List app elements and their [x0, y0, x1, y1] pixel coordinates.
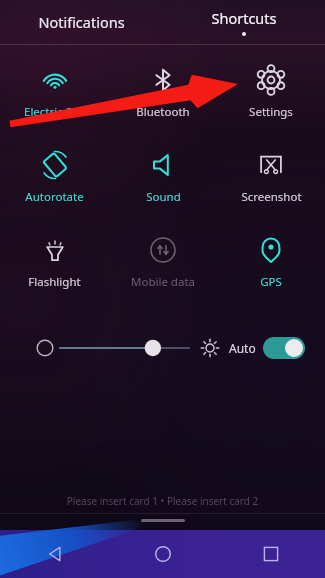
button[interactable]: Bluetooth: [109, 61, 217, 124]
staticText: Bluetooth: [136, 104, 190, 120]
button[interactable]: Mobile data: [109, 231, 217, 294]
staticText: Please insert card 1 • Please insert car…: [0, 494, 325, 508]
staticText: Shortcuts: [211, 8, 277, 28]
button[interactable]: Electric Sea: [0, 61, 109, 124]
button[interactable]: [60, 331, 189, 365]
button[interactable]: Flashlight: [0, 231, 109, 294]
staticText: Auto: [229, 340, 256, 356]
button[interactable]: Shortcuts: [162, 0, 325, 44]
staticText: Autorotate: [25, 189, 84, 205]
button[interactable]: Recents: [217, 530, 325, 578]
button[interactable]: Home: [109, 530, 217, 578]
staticText: Screenshot: [241, 189, 302, 205]
button[interactable]: Back: [0, 530, 109, 578]
button[interactable]: Settings: [217, 61, 325, 124]
button[interactable]: Sound: [109, 146, 217, 209]
staticText: Notifications: [38, 12, 125, 32]
staticText: Mobile data: [131, 274, 195, 290]
button[interactable]: Screenshot: [217, 146, 325, 209]
button[interactable]: Notifications: [0, 0, 162, 44]
staticText: Sound: [146, 189, 181, 205]
staticText: GPS: [260, 274, 282, 290]
staticText: Settings: [249, 104, 293, 120]
button[interactable]: GPS: [217, 231, 325, 294]
button[interactable]: Brightness: [199, 337, 221, 359]
staticText: Flashlight: [28, 274, 81, 290]
button[interactable]: Auto brightness toggle: [263, 337, 305, 359]
button[interactable]: Autorotate: [0, 146, 109, 209]
staticText: Electric Sea: [24, 104, 85, 120]
